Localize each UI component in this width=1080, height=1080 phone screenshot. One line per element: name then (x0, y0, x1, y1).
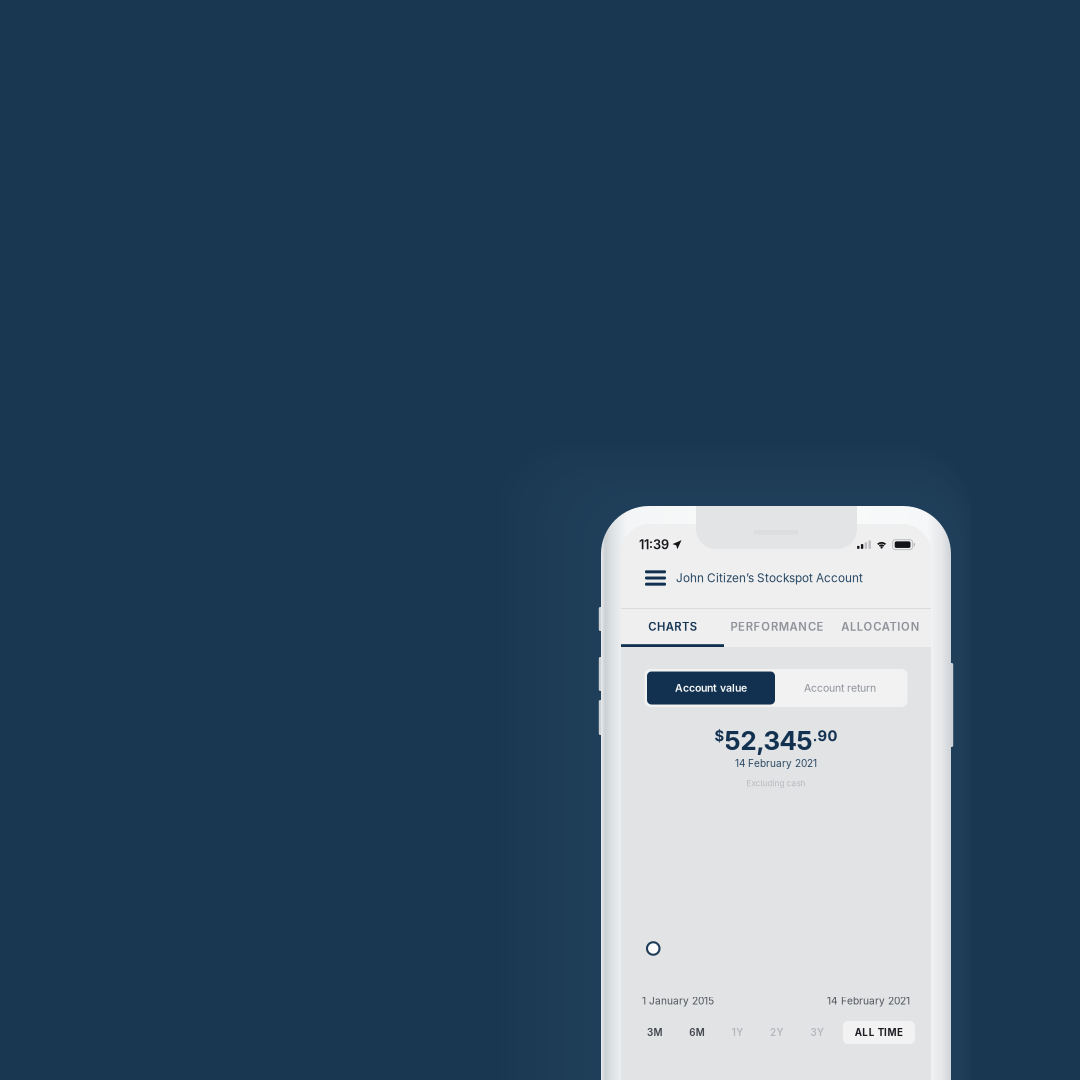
staticText: 1 January 2015 (642, 995, 714, 1007)
staticText: CHARTS (648, 620, 697, 633)
button[interactable]: 6M (681, 1021, 713, 1044)
button[interactable]: 2Y (762, 1021, 792, 1044)
staticText: 1Y (732, 1027, 743, 1038)
staticText: Account value (675, 682, 747, 694)
staticText: $ (714, 727, 724, 745)
staticText: 52,345 (724, 725, 812, 756)
staticText: 14 February 2021 (827, 995, 910, 1007)
staticText: 3Y (810, 1027, 824, 1038)
button[interactable]: 3M (639, 1021, 670, 1044)
staticText: ALL TIME (855, 1027, 903, 1038)
button[interactable]: ALL TIME (843, 1021, 915, 1044)
staticText: 6M (689, 1027, 705, 1038)
staticText: Excluding cash (746, 778, 805, 788)
button[interactable]: Account value (647, 671, 775, 704)
button[interactable]: PERFORMANCE (724, 609, 830, 647)
button[interactable]: Open menu (645, 563, 666, 593)
staticText: 2Y (770, 1027, 784, 1038)
button[interactable]: 1Y (724, 1021, 751, 1044)
staticText: John Citizen’s Stockspot Account (676, 571, 863, 585)
staticText: Account return (804, 682, 876, 694)
button[interactable]: 3Y (802, 1021, 832, 1044)
staticText: PERFORMANCE (730, 620, 824, 633)
button[interactable]: CHARTS (621, 609, 724, 647)
staticText: 11:39 (639, 537, 669, 552)
staticText: .90 (812, 727, 837, 745)
staticText: ALLOCATION (841, 620, 920, 633)
button[interactable]: ALLOCATION (830, 609, 931, 647)
staticText: 14 February 2021 (735, 757, 817, 769)
button[interactable]: Account return (775, 671, 905, 704)
staticText: 3M (647, 1027, 662, 1038)
